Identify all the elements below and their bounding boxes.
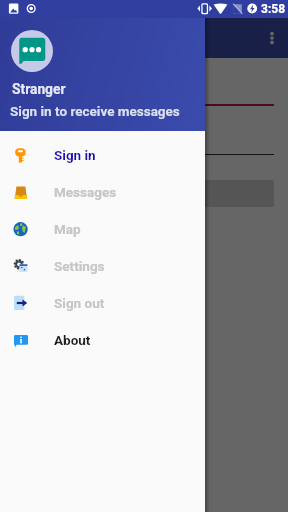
button[interactable]: More options — [255, 18, 288, 58]
button[interactable]: Sign out — [0, 284, 205, 321]
button[interactable]: Messages — [0, 173, 205, 210]
button[interactable]: Sign in — [0, 136, 205, 173]
staticText: Messages — [54, 184, 117, 200]
button[interactable]: About — [0, 321, 205, 358]
staticText: About — [54, 332, 91, 348]
button[interactable] — [14, 180, 274, 207]
staticText: Sign out — [54, 295, 105, 311]
staticText: 3:58 — [261, 2, 286, 16]
staticText: Sign in to receive messages — [10, 103, 180, 119]
button[interactable] — [0, 0, 288, 512]
staticText: Settings — [54, 258, 105, 274]
staticText: Sign in — [54, 147, 96, 163]
staticText: Map — [54, 221, 81, 237]
staticText: Stranger — [12, 81, 66, 97]
button[interactable]: Settings — [0, 247, 205, 284]
button[interactable]: Map — [0, 210, 205, 247]
